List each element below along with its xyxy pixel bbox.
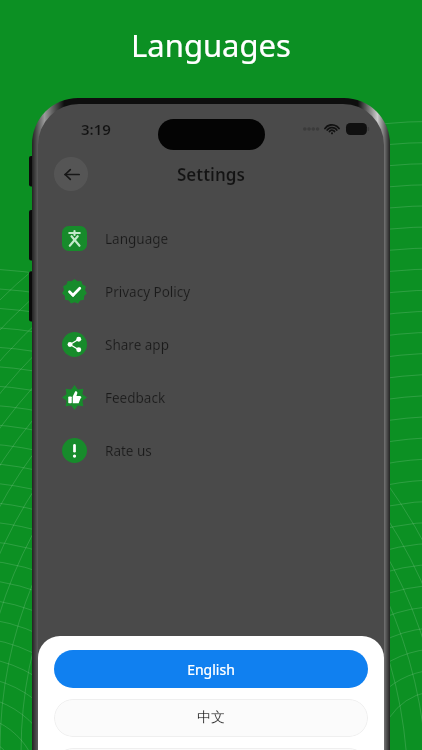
button[interactable]: Share app xyxy=(38,318,384,371)
staticText: English xyxy=(187,660,235,679)
staticText: Language xyxy=(105,230,169,248)
staticText: Feedback xyxy=(105,389,166,407)
button[interactable]: Việt Nam xyxy=(54,748,368,750)
staticText: Privacy Policy xyxy=(105,283,191,301)
staticText: 中文 xyxy=(197,709,225,727)
button[interactable]: Privacy Policy xyxy=(38,265,384,318)
staticText: 3:19 xyxy=(81,119,111,139)
staticText: Rate us xyxy=(105,442,152,460)
staticText: Settings xyxy=(177,163,245,186)
button[interactable]: 中文 xyxy=(54,699,368,737)
staticText: Languages xyxy=(131,24,291,66)
button[interactable]: Feedback xyxy=(38,371,384,424)
button[interactable]: English xyxy=(54,650,368,688)
button[interactable]: Back xyxy=(54,157,88,191)
staticText: Share app xyxy=(105,336,169,354)
button[interactable]: Rate us xyxy=(38,424,384,477)
button[interactable]: Language xyxy=(38,212,384,265)
